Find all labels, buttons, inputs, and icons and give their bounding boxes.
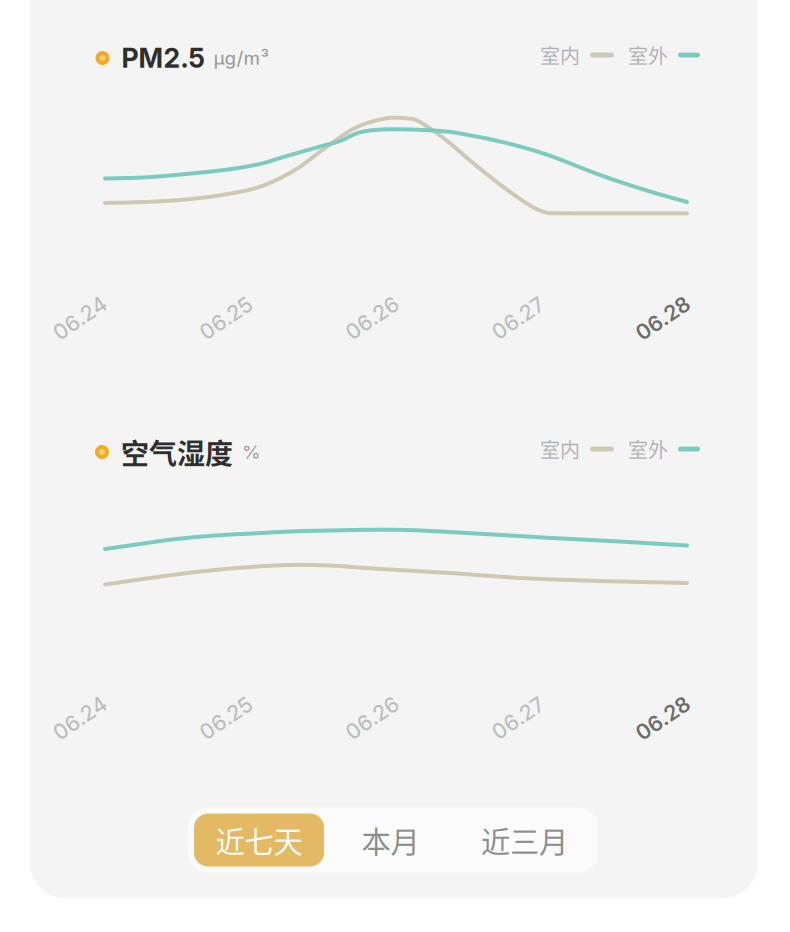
staticText: 近三月	[481, 819, 568, 861]
button[interactable]: 本月	[324, 813, 457, 866]
staticText: 室内	[540, 40, 580, 69]
staticText: 06.28	[632, 705, 693, 731]
staticText: 室内	[540, 434, 580, 463]
staticText: 06.24	[50, 705, 110, 731]
staticText: 06.25	[196, 705, 255, 731]
staticText: 本月	[361, 819, 419, 861]
staticText: 06.25	[196, 305, 255, 331]
button[interactable]: 近七天	[194, 813, 324, 866]
staticText: 室外	[628, 434, 668, 463]
staticText: 06.27	[489, 305, 547, 331]
button[interactable]: 近三月	[457, 813, 592, 866]
staticText: 06.28	[632, 305, 693, 331]
staticText: µg/m³	[213, 47, 268, 69]
staticText: %	[242, 441, 261, 463]
staticText: 室外	[628, 40, 668, 69]
staticText: 06.27	[489, 705, 547, 731]
staticText: 06.24	[50, 305, 110, 331]
staticText: 近七天	[215, 819, 302, 861]
staticText: PM2.5	[121, 42, 204, 74]
staticText: 06.26	[342, 305, 401, 331]
staticText: 06.26	[342, 705, 401, 731]
staticText: 空气湿度	[121, 432, 233, 472]
